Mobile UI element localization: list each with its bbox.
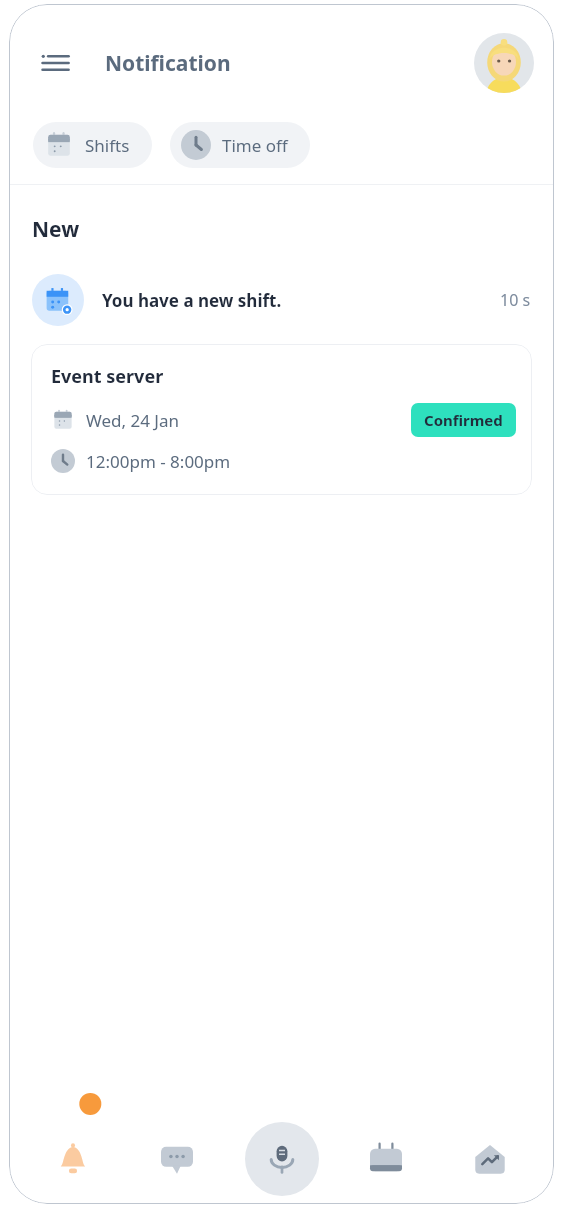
button[interactable]: Voice [242, 1119, 322, 1199]
button[interactable]: Notifications [33, 1119, 113, 1199]
staticText: Event server [51, 364, 164, 389]
button[interactable]: Messages [137, 1119, 217, 1199]
staticText: You have a new shift. [102, 289, 282, 312]
button[interactable]: Event server [31, 344, 532, 495]
button[interactable]: Confirmed [411, 403, 516, 437]
button[interactable]: Insights [450, 1119, 530, 1199]
button[interactable]: Profile [474, 33, 534, 93]
button[interactable]: Schedule [346, 1119, 426, 1199]
button[interactable]: Menu [37, 44, 75, 82]
staticText: Notification [105, 49, 231, 78]
button[interactable]: Time off [170, 122, 310, 168]
staticText: 12:00pm - 8:00pm [86, 450, 231, 473]
button[interactable]: Shifts [33, 122, 152, 168]
staticText: New [32, 215, 80, 244]
staticText: Time off [222, 134, 288, 157]
staticText: Wed, 24 Jan [86, 409, 180, 432]
staticText: 10 s [500, 289, 531, 311]
staticText: Shifts [85, 134, 130, 157]
staticText: Confirmed [424, 410, 503, 430]
button[interactable]: You have a new shift. [9, 274, 554, 326]
